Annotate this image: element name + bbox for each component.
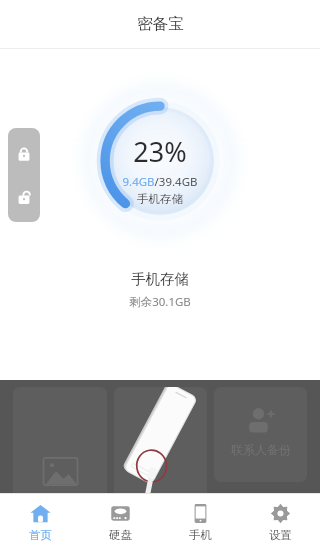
button[interactable]: Photo backup (13, 387, 107, 493)
staticText: 联系人备份 (231, 442, 291, 457)
staticText: 手机 (189, 528, 212, 542)
staticText: 23% (133, 133, 187, 170)
staticText: 手机存储 (131, 270, 189, 288)
staticText: 手机存储 (137, 192, 183, 206)
button[interactable]: 硬盘 (80, 494, 160, 550)
staticText: 首页 (29, 528, 52, 542)
button[interactable]: 首页 (0, 494, 80, 550)
staticText: 设置 (269, 528, 292, 542)
button[interactable]: Connect phone (114, 387, 207, 493)
staticText: 硬盘 (109, 528, 132, 542)
button[interactable]: 联系人备份 (214, 387, 307, 482)
staticText: 密备宝 (137, 14, 184, 34)
staticText: 剩余30.1GB (129, 294, 191, 310)
button[interactable]: 设置 (240, 494, 320, 550)
button[interactable]: Lock toggle (8, 128, 40, 222)
button[interactable]: 手机 (160, 494, 240, 550)
staticText: 9.4GB/39.4GB (122, 174, 198, 190)
